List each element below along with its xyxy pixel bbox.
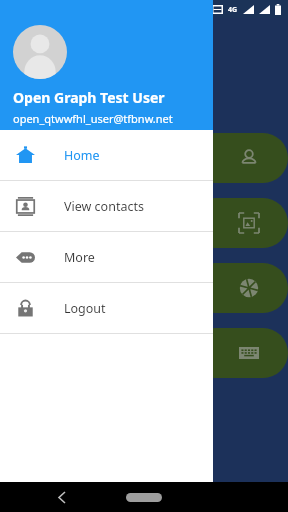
button[interactable]: Home [0,130,213,180]
button[interactable]: More [0,232,213,282]
staticText: More [64,249,95,266]
button[interactable]: Back [50,485,74,509]
button[interactable]: Action 2 [190,263,288,313]
staticText: View contacts [64,198,144,215]
button[interactable]: Home [126,493,162,502]
button[interactable]: Action 3 [190,328,288,378]
button[interactable]: Logout [0,283,213,333]
staticText: Home [64,147,100,164]
button[interactable]: Open Graph Test User [0,0,213,130]
button[interactable]: Action 0 [190,133,288,183]
staticText: Logout [64,300,106,317]
staticText: Open Graph Test User [13,88,165,107]
staticText: open_qtwwfhl_user@tfbnw.net [13,111,173,126]
button[interactable]: Action 1 [190,198,288,248]
button[interactable]: View contacts [0,181,213,231]
staticText: 4G [228,5,238,15]
